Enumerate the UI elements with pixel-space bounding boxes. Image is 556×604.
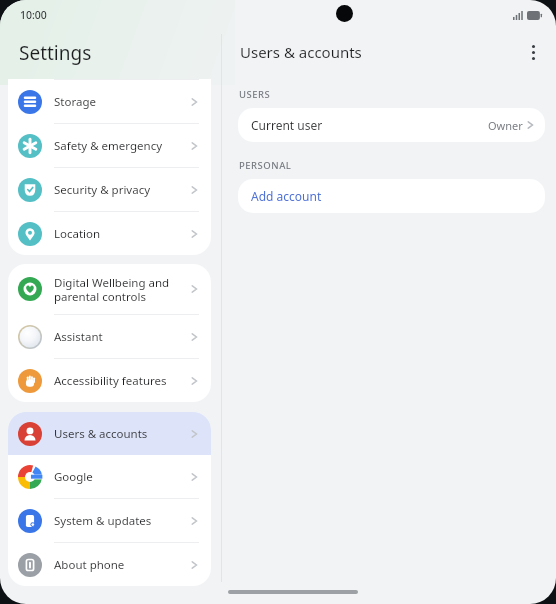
staticText: Users & accounts xyxy=(240,42,516,62)
button[interactable]: Digital Wellbeing and parental controls xyxy=(8,264,211,314)
button[interactable]: Current user xyxy=(238,108,545,142)
staticText: Users & accounts xyxy=(54,426,190,442)
staticText: Current user xyxy=(251,117,488,133)
staticText: System & updates xyxy=(54,513,190,529)
button[interactable]: System & updates xyxy=(8,499,211,542)
button[interactable]: Storage xyxy=(8,80,211,123)
button[interactable]: Assistant xyxy=(8,315,211,358)
button[interactable]: Accessibility features xyxy=(8,359,211,402)
staticText: 10:00 xyxy=(20,8,47,22)
staticText: Add account xyxy=(251,188,322,204)
staticText: Accessibility features xyxy=(54,373,190,389)
button[interactable]: Add account xyxy=(238,179,545,213)
staticText: Google xyxy=(54,469,190,485)
staticText: Location xyxy=(54,226,190,242)
staticText: Owner xyxy=(488,118,523,133)
button[interactable]: Safety & emergency xyxy=(8,124,211,167)
button[interactable]: Google xyxy=(8,455,211,498)
staticText: Security & privacy xyxy=(54,182,190,198)
button[interactable]: Users & accounts xyxy=(8,412,211,455)
button[interactable]: Security & privacy xyxy=(8,168,211,211)
button[interactable]: About phone xyxy=(8,543,211,586)
staticText: Digital Wellbeing and parental controls xyxy=(54,275,190,304)
button[interactable]: More options xyxy=(516,35,550,69)
button[interactable]: Location xyxy=(8,212,211,255)
staticText: PERSONAL xyxy=(239,159,292,172)
staticText: Settings xyxy=(19,40,92,66)
staticText: About phone xyxy=(54,557,190,573)
staticText: Storage xyxy=(54,94,190,110)
staticText: USERS xyxy=(239,88,271,101)
staticText: Assistant xyxy=(54,329,190,345)
staticText: Safety & emergency xyxy=(54,138,190,154)
